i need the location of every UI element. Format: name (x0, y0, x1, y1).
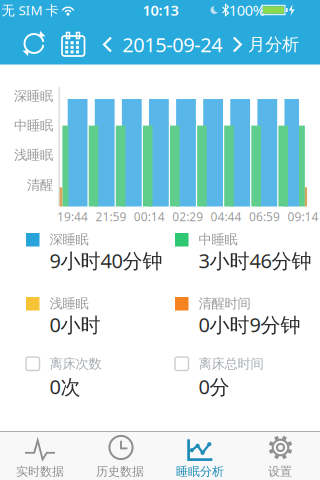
button[interactable]: 实时数据 (0, 431, 80, 480)
staticText: 2015-09-24 (122, 31, 222, 58)
staticText: 离床总时间 (198, 356, 263, 372)
staticText: 3小时46分钟 (198, 247, 311, 274)
staticText: 00:14 (134, 208, 165, 224)
staticText: 无 SIM 卡 (1, 1, 58, 19)
staticText: 0次 (49, 373, 80, 400)
staticText: 09:14 (287, 208, 318, 224)
button[interactable]: 前一天 (95, 29, 119, 59)
button[interactable]: 设置 (240, 431, 320, 480)
staticText: 设置 (268, 464, 292, 479)
staticText: 06:59 (249, 208, 280, 224)
staticText: 100% (229, 0, 265, 20)
staticText: 中睡眠 (14, 117, 53, 134)
staticText: 19:44 (57, 208, 88, 224)
button[interactable]: 刷新 (17, 26, 51, 60)
staticText: 浅睡眠 (49, 295, 88, 312)
staticText: 0分 (198, 373, 229, 400)
button[interactable]: 离床次数 (26, 356, 176, 372)
button[interactable]: 选择日期 (55, 26, 91, 62)
staticText: 月分析 (248, 34, 299, 55)
button[interactable]: 历史数据 (80, 431, 160, 480)
staticText: 睡眠分析 (176, 464, 224, 479)
staticText: 0小时9分钟 (198, 311, 300, 338)
staticText: 深睡眠 (49, 231, 88, 248)
button[interactable]: 月分析 (248, 34, 299, 55)
staticText: 0小时 (49, 311, 100, 338)
button[interactable]: 离床总时间 (175, 356, 320, 372)
staticText: 04:44 (211, 208, 242, 224)
staticText: 历史数据 (96, 464, 144, 479)
staticText: 浅睡眠 (14, 147, 53, 163)
staticText: 10:13 (142, 0, 178, 20)
staticText: 9小时40分钟 (49, 247, 162, 274)
staticText: 深睡眠 (14, 88, 53, 104)
button[interactable]: 后一天 (226, 29, 250, 59)
button[interactable]: 睡眠分析 (160, 431, 240, 480)
staticText: 清醒 (27, 177, 53, 193)
staticText: 实时数据 (16, 464, 64, 479)
staticText: 中睡眠 (198, 231, 237, 248)
staticText: 21:59 (95, 208, 126, 224)
staticText: 清醒时间 (198, 295, 250, 312)
staticText: 离床次数 (49, 356, 101, 372)
staticText: 02:29 (172, 208, 203, 224)
